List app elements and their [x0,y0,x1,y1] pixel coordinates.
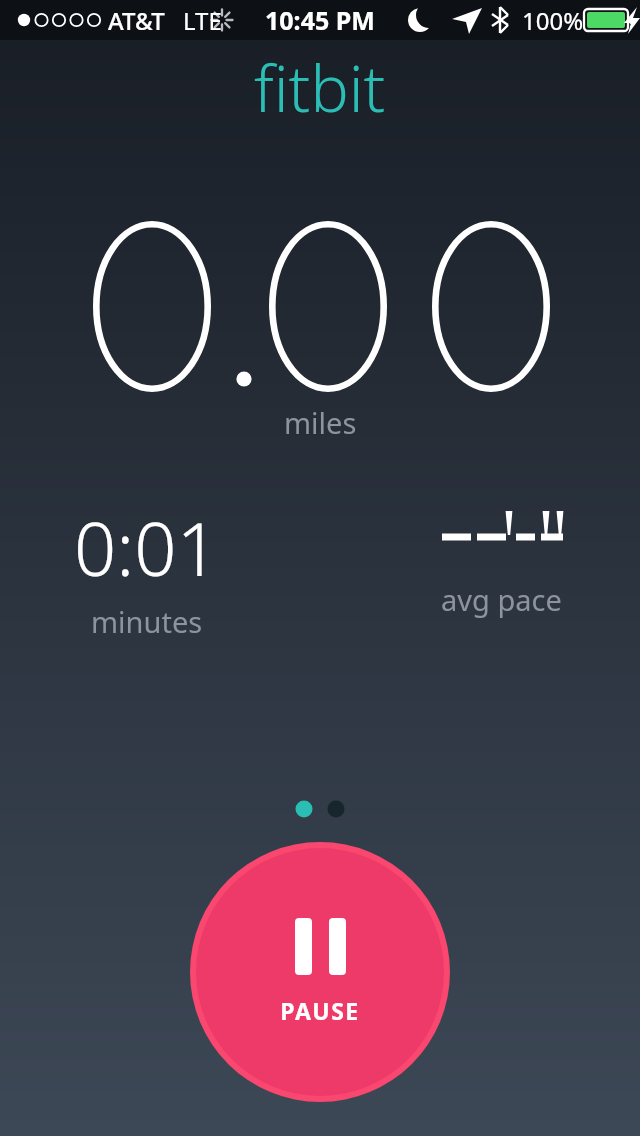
staticText: avg pace [441,580,562,619]
staticText: fitbit [254,44,386,131]
staticText: 10:45 PM [265,3,375,37]
staticText: PAUSE [280,995,360,1026]
button[interactable]: Pause workout [190,842,450,1102]
staticText: 0:01 [74,497,219,598]
staticText: LTE [183,4,222,37]
staticText: minutes [91,602,203,641]
staticText: AT&T [108,4,165,37]
staticText: miles [284,403,357,442]
staticText: 100% [522,4,584,37]
